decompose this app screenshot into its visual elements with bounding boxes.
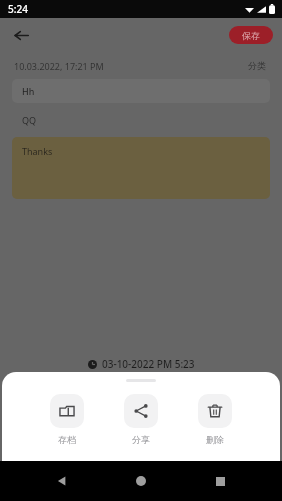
button[interactable]: Back xyxy=(8,22,34,48)
staticText: 5:24 xyxy=(8,2,28,16)
button[interactable]: Home xyxy=(124,464,158,498)
staticText: Thanks xyxy=(22,145,53,157)
button[interactable]: Hh xyxy=(12,79,270,103)
button[interactable]: 保存 xyxy=(229,26,273,44)
other: Delete xyxy=(207,403,223,419)
other: Share xyxy=(133,403,149,419)
staticText: Hh xyxy=(22,85,35,97)
button[interactable]: QQ xyxy=(12,109,270,131)
staticText: 分类 xyxy=(248,60,266,71)
button[interactable]: Delete xyxy=(192,392,238,447)
staticText: 删除 xyxy=(206,434,224,445)
other: Archive xyxy=(59,403,75,419)
button[interactable]: Share xyxy=(118,392,164,447)
button[interactable]: Back xyxy=(45,464,79,498)
staticText: 03-10-2022 PM 5:23 xyxy=(102,357,195,371)
staticText: 分享 xyxy=(132,434,150,445)
staticText: 存档 xyxy=(58,434,76,445)
button[interactable]: Recents xyxy=(203,464,237,498)
button[interactable]: 分类 xyxy=(246,58,268,73)
button[interactable]: Archive xyxy=(44,392,90,447)
staticText: QQ xyxy=(22,114,37,126)
staticText: 10.03.2022, 17:21 PM xyxy=(14,60,104,72)
staticText: 保存 xyxy=(242,30,260,41)
